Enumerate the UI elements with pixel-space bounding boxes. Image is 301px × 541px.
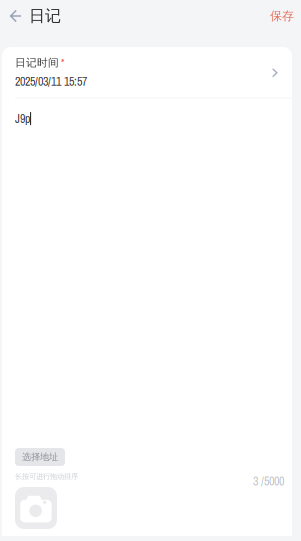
button[interactable]: Back	[0, 0, 28, 32]
button[interactable]: 保存	[258, 0, 301, 32]
staticText: 选择地址	[22, 451, 58, 463]
button[interactable]: Add photo	[15, 487, 57, 529]
staticText: *	[61, 56, 64, 70]
staticText: 长按可进行拖动排序	[15, 472, 78, 481]
staticText: J9p	[15, 110, 30, 127]
staticText: 日记时间	[15, 56, 59, 69]
staticText: 保存	[270, 8, 294, 23]
button[interactable]: 日记时间	[2, 47, 292, 97]
staticText: 日记	[29, 6, 61, 26]
button[interactable]: 选择地址	[15, 448, 65, 466]
staticText: 2025/03/11 15:57	[15, 73, 87, 90]
staticText: 3 /5000	[253, 473, 284, 489]
